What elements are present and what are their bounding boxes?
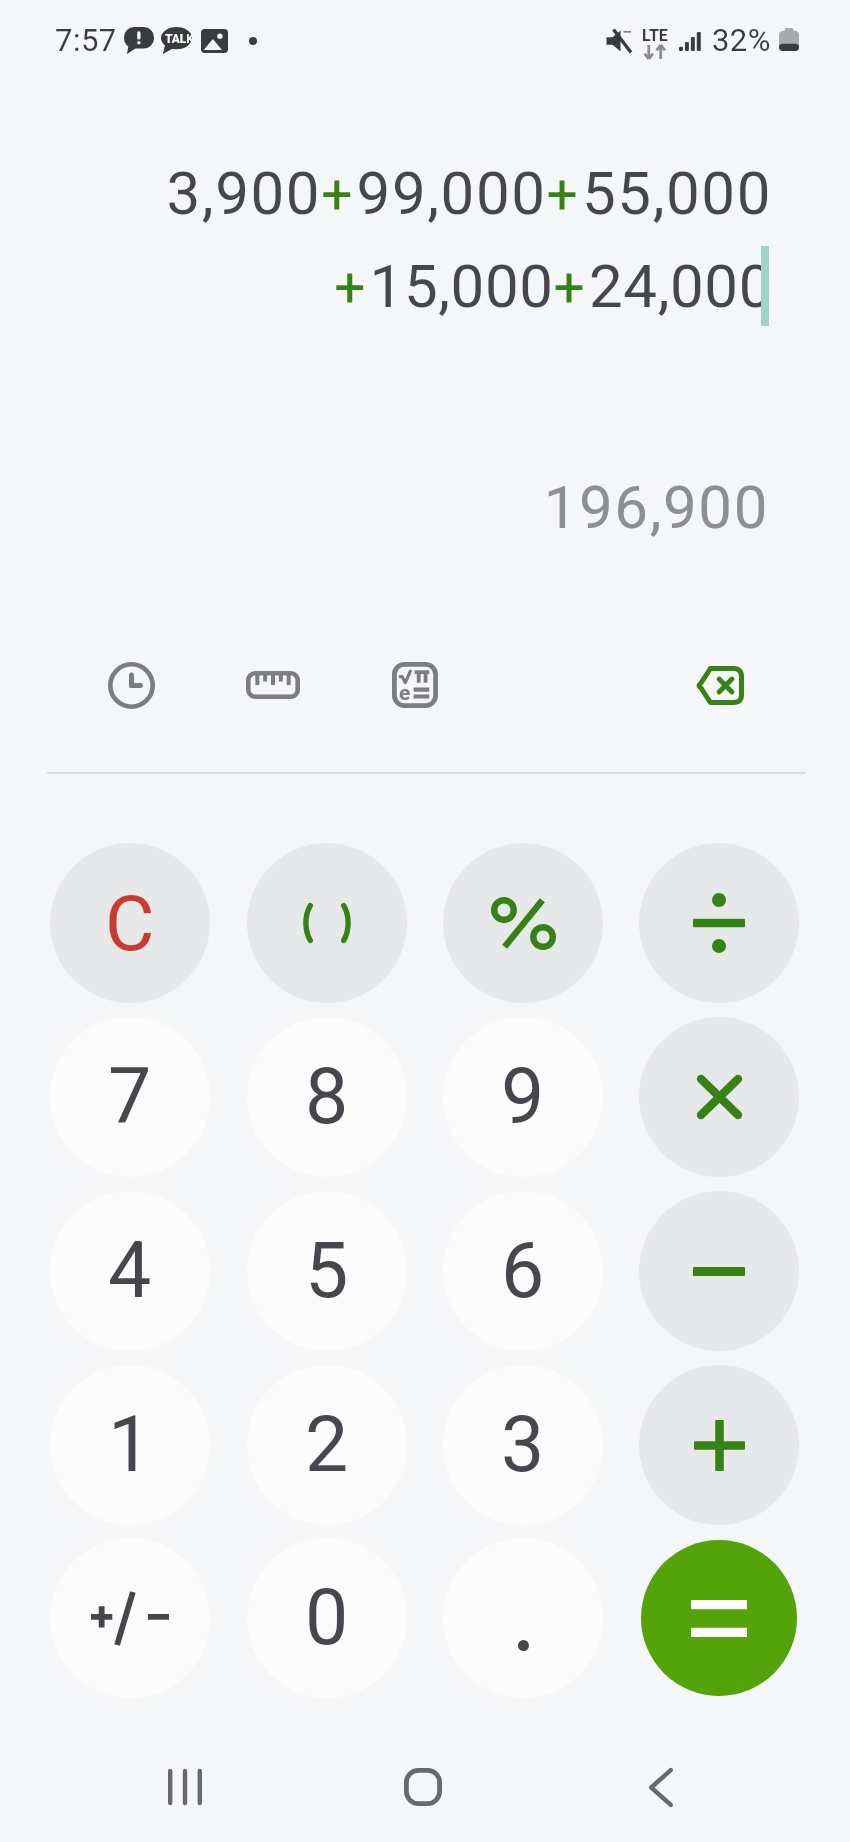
button[interactable]: Backspace — [675, 640, 765, 730]
button[interactable]: Plus — [639, 1365, 799, 1525]
staticText: 32% — [712, 22, 771, 58]
staticText: 196,900 — [0, 472, 769, 542]
staticText: 2 — [305, 1400, 349, 1490]
button[interactable]: Plus minus — [50, 1538, 210, 1698]
button[interactable]: Unit converter — [228, 640, 318, 730]
staticText: LTE — [642, 26, 668, 45]
staticText: e — [399, 681, 411, 706]
button[interactable]: 7 — [50, 1017, 210, 1177]
staticText: 5 — [305, 1226, 349, 1316]
button[interactable]: Multiply — [639, 1017, 799, 1177]
staticText: C — [105, 879, 155, 968]
staticText: 1 — [108, 1400, 152, 1490]
button[interactable]: Percent — [443, 843, 603, 1003]
staticText: 0 — [305, 1573, 349, 1663]
button[interactable]: Scientific calculator — [370, 640, 460, 730]
button[interactable]: Divide — [639, 843, 799, 1003]
button[interactable]: Back — [611, 1737, 711, 1837]
button[interactable]: Clear — [50, 843, 210, 1003]
button[interactable]: Minus — [639, 1191, 799, 1351]
button[interactable]: Recents — [135, 1737, 235, 1837]
button[interactable]: Home — [373, 1737, 473, 1837]
staticText: 7:57 — [55, 22, 117, 58]
staticText: 6 — [501, 1226, 545, 1316]
staticText: +15,000+24,000 — [0, 251, 773, 321]
staticText: 4 — [108, 1226, 152, 1316]
button[interactable]: 1 — [50, 1365, 210, 1525]
button[interactable]: 8 — [247, 1017, 407, 1177]
button[interactable]: 0 — [247, 1538, 407, 1698]
staticText: 9 — [501, 1052, 545, 1142]
button[interactable]: 3 — [443, 1365, 603, 1525]
staticText: 3,900+99,000+55,000 — [0, 158, 772, 228]
button[interactable]: 5 — [247, 1191, 407, 1351]
button[interactable]: 4 — [50, 1191, 210, 1351]
staticText: TALK — [165, 32, 194, 46]
staticText: 8 — [305, 1052, 349, 1142]
button[interactable]: Decimal point — [443, 1538, 603, 1698]
staticText: 3 — [501, 1400, 545, 1490]
button[interactable]: Equals — [641, 1540, 797, 1696]
staticText: 7 — [108, 1052, 152, 1142]
button[interactable]: Parentheses — [247, 843, 407, 1003]
button[interactable]: 2 — [247, 1365, 407, 1525]
button[interactable]: 9 — [443, 1017, 603, 1177]
button[interactable]: History — [86, 640, 176, 730]
button[interactable]: 6 — [443, 1191, 603, 1351]
